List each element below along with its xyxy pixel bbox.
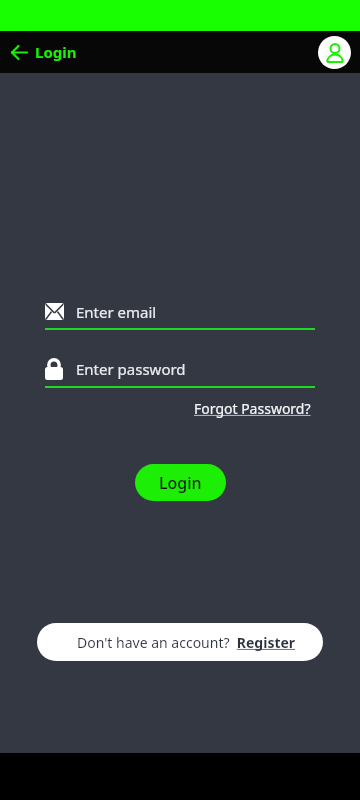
button[interactable]: Forgot Password? xyxy=(194,399,311,418)
staticText: Login xyxy=(35,42,77,62)
button[interactable]: Enter password xyxy=(45,352,315,386)
staticText: Enter email xyxy=(76,302,157,322)
staticText: Don't have an account? Register xyxy=(77,633,296,652)
button[interactable]: Don't have an account? Register xyxy=(37,623,323,661)
button[interactable] xyxy=(318,36,351,69)
staticText: Enter password xyxy=(76,359,186,379)
button[interactable]: Login xyxy=(135,464,226,501)
button[interactable] xyxy=(10,43,28,61)
staticText: Login xyxy=(159,472,202,494)
button[interactable]: Enter email xyxy=(45,295,315,328)
